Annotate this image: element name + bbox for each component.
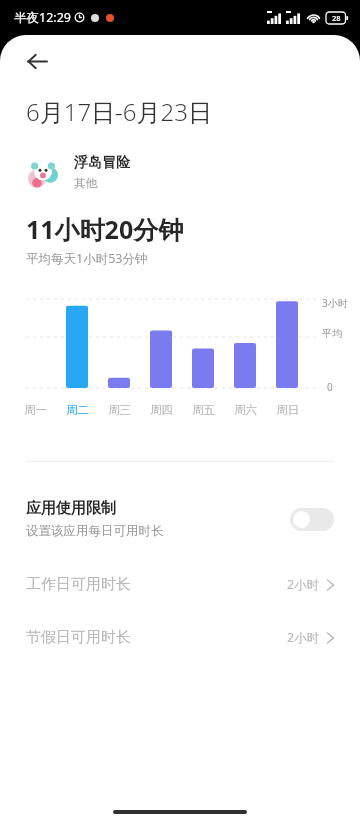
staticText: 2小时: [287, 629, 320, 646]
staticText: 周日: [276, 403, 299, 417]
button[interactable]: 工作日可用时长: [0, 570, 360, 599]
staticText: 节假日可用时长: [26, 628, 131, 647]
staticText: 3小时: [322, 296, 348, 310]
staticText: 平均: [322, 327, 342, 340]
staticText: 平均每天1小时53分钟: [26, 250, 148, 267]
staticText: 2小时: [287, 576, 320, 593]
staticText: 周四: [150, 403, 173, 417]
staticText: 11小时20分钟: [26, 212, 184, 246]
staticText: 周二: [66, 403, 89, 417]
staticText: 设置该应用每日可用时长: [26, 523, 164, 539]
staticText: 0: [327, 380, 333, 394]
staticText: 周一: [24, 403, 47, 417]
staticText: 周五: [192, 403, 215, 417]
staticText: 周三: [108, 403, 131, 417]
staticText: 应用使用限制: [26, 499, 116, 518]
staticText: 周六: [234, 403, 257, 417]
button[interactable]: 节假日可用时长: [0, 623, 360, 652]
staticText: 6月17日-6月23日: [26, 95, 212, 128]
button[interactable]: 应用使用限制开关: [290, 508, 334, 531]
staticText: 半夜12:29: [14, 9, 71, 26]
button[interactable]: 应用使用限制: [0, 495, 360, 543]
staticText: 浮岛冒险: [74, 154, 130, 172]
staticText: 工作日可用时长: [26, 575, 131, 594]
button[interactable]: 返回: [14, 38, 60, 84]
staticText: 其他: [74, 176, 97, 190]
staticText: 28: [332, 13, 341, 23]
